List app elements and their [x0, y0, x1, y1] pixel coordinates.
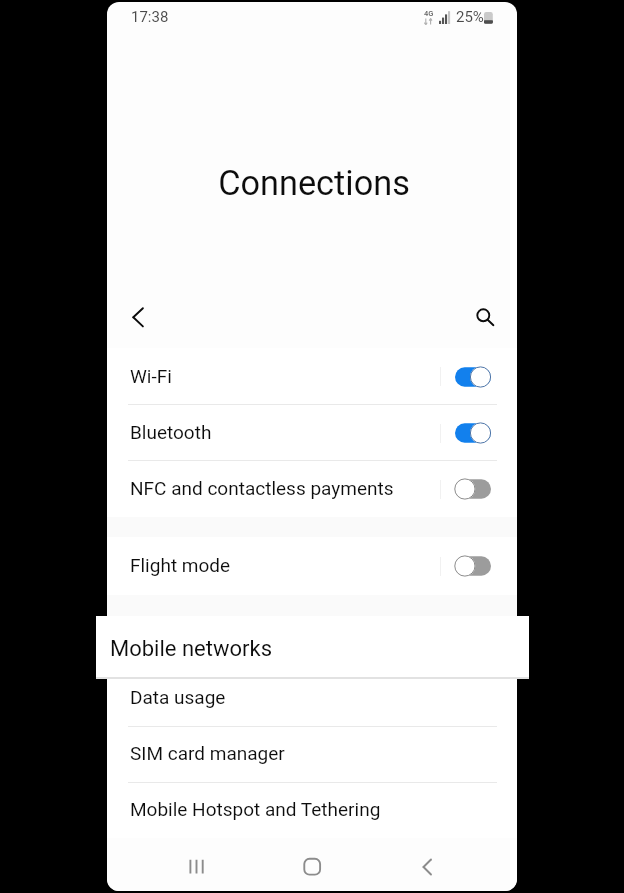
button[interactable]: Mobile networks — [96, 616, 529, 677]
button[interactable]: SIM card manager — [107, 726, 517, 782]
staticText: Mobile networks — [110, 636, 272, 662]
staticText: Wi-Fi — [130, 365, 172, 387]
staticText: Connections — [109, 163, 517, 203]
button[interactable]: Data usage — [107, 670, 517, 726]
staticText: 25% — [456, 8, 484, 26]
button[interactable]: Recent apps — [168, 849, 212, 891]
staticText: Bluetooth — [130, 421, 212, 443]
button[interactable]: Search — [463, 295, 507, 339]
staticText: 4G — [424, 9, 434, 18]
button[interactable]: Wi-Fi — [107, 348, 517, 405]
button[interactable]: NFC and contactless payments — [107, 461, 517, 517]
staticText: Flight mode — [130, 554, 231, 576]
button[interactable]: Flight mode — [107, 537, 517, 595]
button[interactable]: Back — [115, 295, 159, 339]
button[interactable]: Bluetooth — [107, 405, 517, 461]
staticText: Data usage — [130, 686, 226, 708]
staticText: Mobile Hotspot and Tethering — [130, 798, 381, 820]
button[interactable]: Back — [405, 849, 449, 891]
button[interactable]: Mobile Hotspot and Tethering — [107, 782, 517, 838]
button[interactable]: Mobile networks — [107, 616, 517, 670]
staticText: 17:38 — [131, 8, 169, 26]
staticText: SIM card manager — [130, 742, 285, 764]
staticText: NFC and contactless payments — [130, 477, 394, 499]
staticText: Mobile networks — [130, 631, 270, 653]
button[interactable]: Home — [290, 849, 334, 891]
